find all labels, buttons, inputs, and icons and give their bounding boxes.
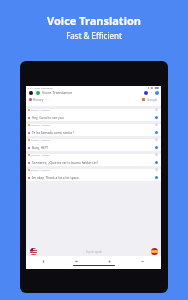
button[interactable]: Play xyxy=(155,116,158,119)
button[interactable]: Account xyxy=(144,91,148,95)
staticText: Busy, HEY? xyxy=(32,146,49,150)
staticText: 9:41 Voice Translation xyxy=(28,86,54,89)
staticText: English - Spanish xyxy=(31,108,50,111)
staticText: Hey, Good to see you xyxy=(32,116,64,120)
staticText: English - Spanish xyxy=(31,168,50,171)
button[interactable]: History xyxy=(26,96,161,103)
button[interactable]: English - Spanish xyxy=(26,166,161,181)
button[interactable]: Home xyxy=(27,257,60,266)
staticText: Sonriente, ¿Quieres ver lo bueno hablar … xyxy=(32,161,98,165)
button[interactable]: Play xyxy=(155,161,158,164)
button[interactable]: English - Spanish xyxy=(26,106,161,121)
button[interactable]: Play xyxy=(155,176,158,179)
button[interactable]: Chats xyxy=(60,257,93,266)
button[interactable]: Copy xyxy=(155,168,158,171)
staticText: Voice Translation xyxy=(42,90,73,95)
staticText: English - Spanish xyxy=(31,138,50,141)
button[interactable]: Profile xyxy=(155,91,159,95)
button[interactable]: English xyxy=(30,248,37,255)
button[interactable]: Menu xyxy=(29,91,33,95)
staticText: Fast & Efficient xyxy=(66,30,122,41)
button[interactable]: Spanish - English xyxy=(26,121,161,136)
button[interactable]: Play xyxy=(155,146,158,149)
button[interactable]: English - Spanish xyxy=(26,136,161,151)
button[interactable]: Copy xyxy=(155,108,158,111)
staticText: Te ha llamado como sentia ? xyxy=(32,131,75,135)
button[interactable]: Copy xyxy=(155,153,158,156)
button[interactable]: Camera xyxy=(93,257,126,266)
staticText: Im okay. Thank a lot a lot space. xyxy=(32,176,80,180)
button[interactable]: Spanish xyxy=(151,248,158,255)
staticText: Voice Translation xyxy=(47,13,141,28)
staticText: Tap to speak xyxy=(86,250,102,254)
button[interactable]: Translate xyxy=(36,91,40,95)
staticText: Spanish - English xyxy=(31,123,50,126)
button[interactable]: Copy xyxy=(155,138,158,141)
staticText: · · · xyxy=(46,98,50,102)
button[interactable]: Spanish - English xyxy=(26,151,161,166)
staticText: Spanish - English xyxy=(31,153,50,156)
button[interactable]: More xyxy=(126,257,159,266)
button[interactable]: Play xyxy=(155,131,158,134)
staticText: History xyxy=(33,98,44,102)
button[interactable]: Copy xyxy=(155,123,158,126)
button[interactable]: Menu xyxy=(26,89,161,96)
staticText: Google xyxy=(147,98,158,102)
